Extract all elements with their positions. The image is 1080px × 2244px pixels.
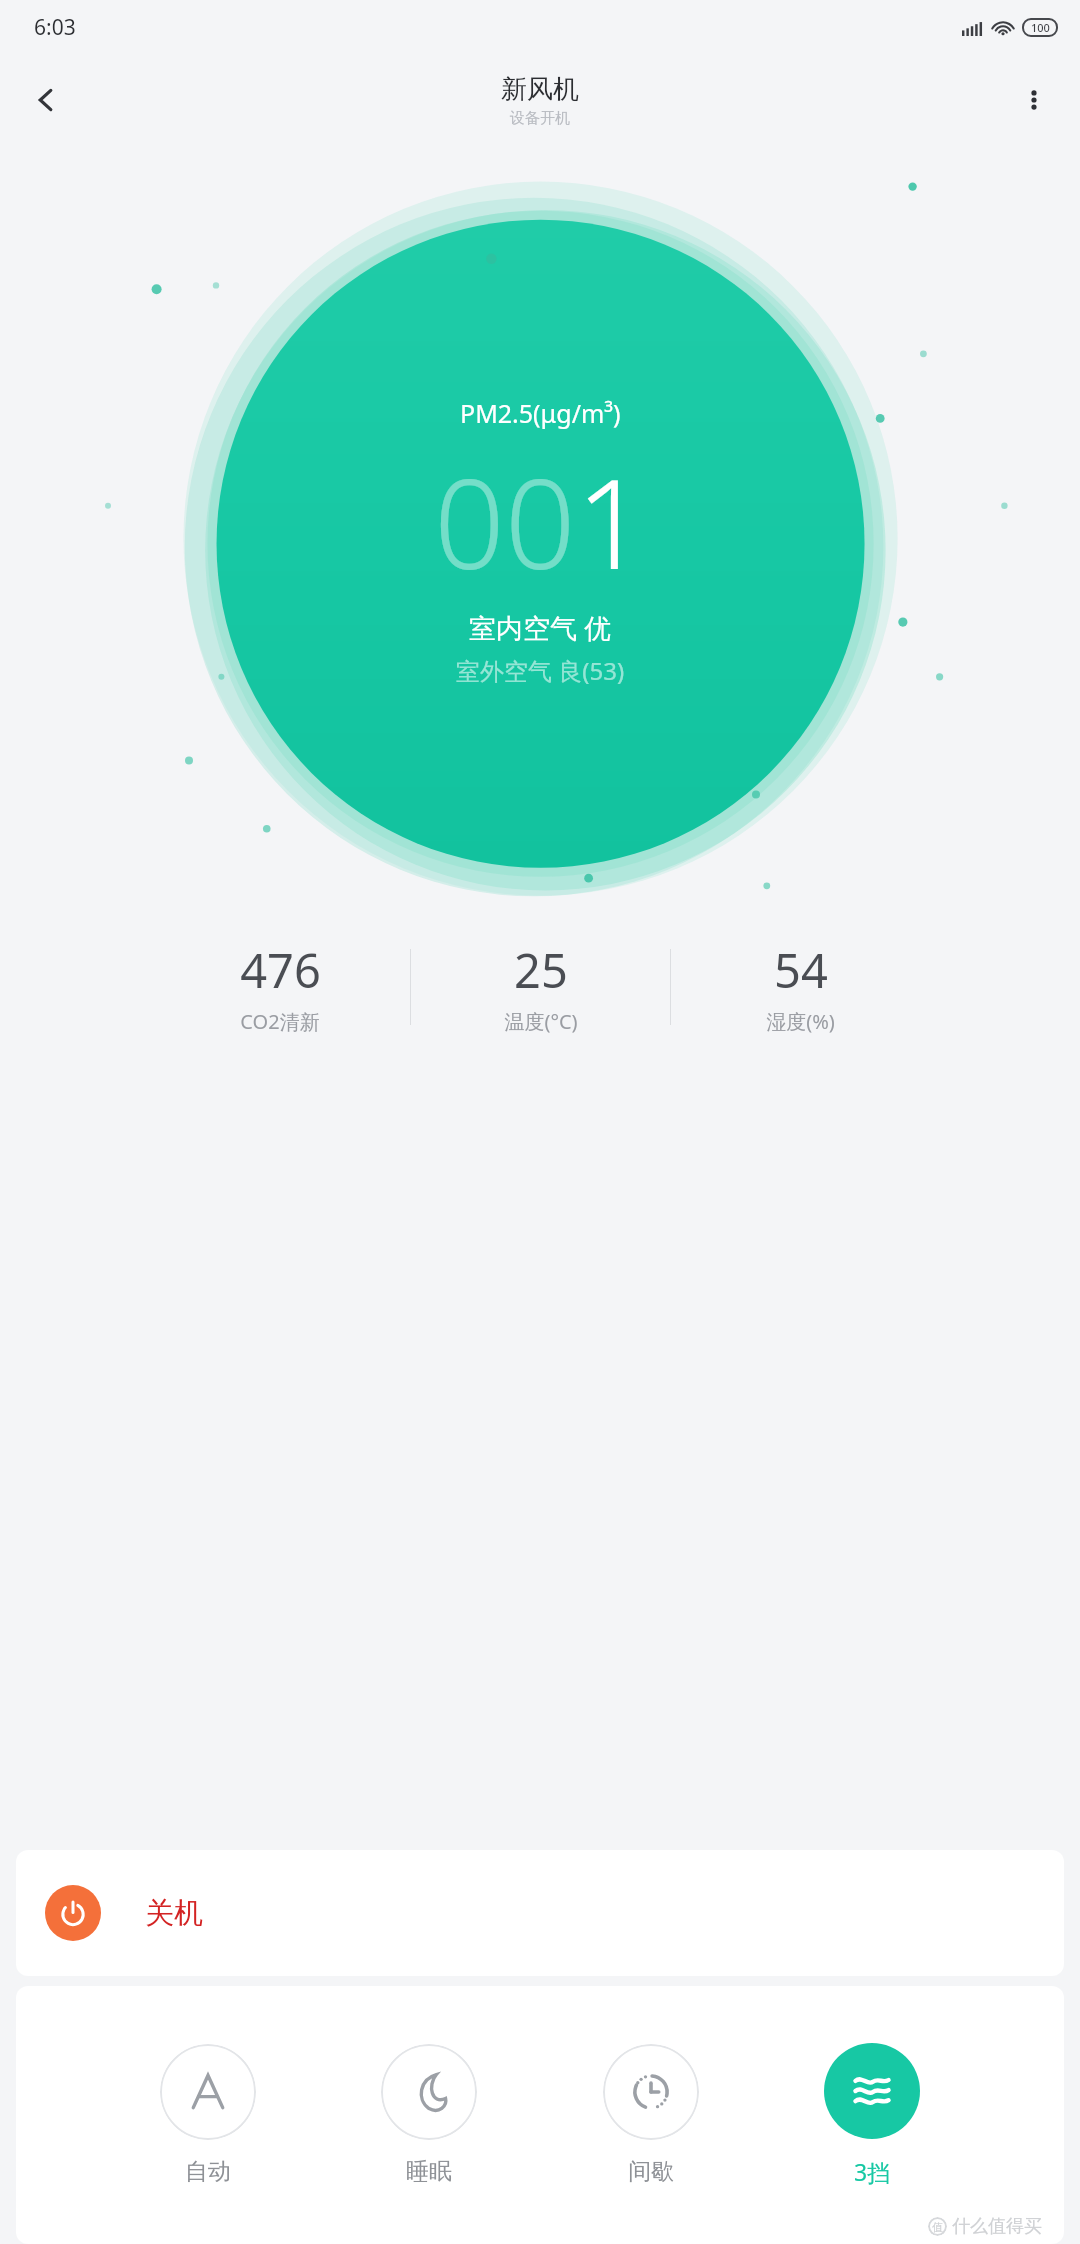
staticText: 25 <box>514 938 568 1002</box>
button[interactable]: 自动 <box>154 2040 262 2190</box>
button[interactable]: Back <box>18 72 74 128</box>
staticText: 湿度(%) <box>766 1008 835 1035</box>
staticText: 值 <box>932 2220 943 2234</box>
button[interactable]: 间歇 <box>597 2040 705 2190</box>
staticText: 476 <box>240 938 321 1002</box>
staticText: 3挡 <box>854 2156 891 2187</box>
staticText: 100 <box>1031 20 1050 35</box>
staticText: 00 <box>434 436 576 605</box>
staticText: 室内空气 优 <box>469 609 612 646</box>
staticText: 6:03 <box>34 13 76 42</box>
staticText: PM2.5(μg/m³) <box>460 396 621 430</box>
button[interactable]: 睡眠 <box>375 2040 483 2190</box>
staticText: 新风机 <box>501 73 579 106</box>
staticText: 室外空气 良(53) <box>456 654 625 687</box>
staticText: CO2清新 <box>240 1008 320 1035</box>
staticText: 自动 <box>185 2157 231 2186</box>
staticText: 设备开机 <box>510 109 570 128</box>
button[interactable]: 关机 <box>16 1850 1064 1976</box>
staticText: 54 <box>774 938 828 1002</box>
staticText: 睡眠 <box>406 2157 452 2186</box>
staticText: 关机 <box>145 1895 203 1932</box>
button[interactable]: More options <box>1006 72 1062 128</box>
staticText: 温度(°C) <box>504 1008 578 1035</box>
staticText: 间歇 <box>628 2157 674 2186</box>
staticText: 什么值得买 <box>952 2215 1042 2238</box>
staticText: 1 <box>576 436 647 605</box>
button[interactable]: 3挡 <box>818 2039 926 2191</box>
